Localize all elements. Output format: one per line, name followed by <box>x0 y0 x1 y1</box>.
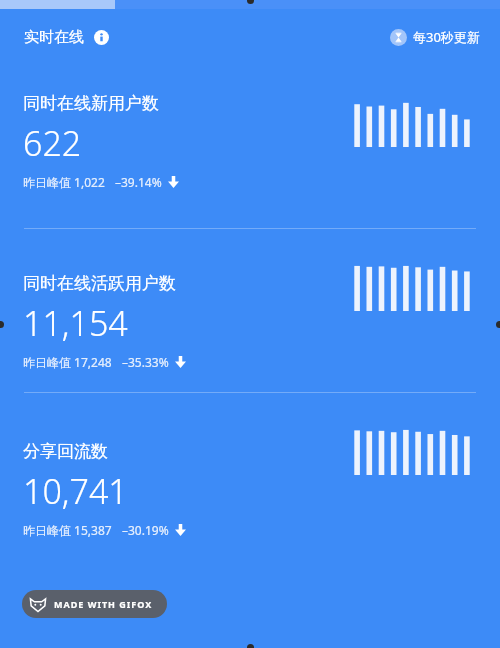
staticText: –35.33% <box>122 354 169 370</box>
staticText: 同时在线新用户数 <box>23 93 159 114</box>
staticText: 昨日峰值 17,248 <box>23 354 112 370</box>
button[interactable]: 同时在线新用户数 <box>0 65 500 190</box>
button[interactable]: 分享回流数 <box>0 393 500 538</box>
staticText: MADE WITH GIFOX <box>54 598 153 610</box>
staticText: 同时在线活跃用户数 <box>23 273 176 294</box>
staticText: 10,741 <box>23 468 128 514</box>
staticText: 分享回流数 <box>23 441 108 462</box>
staticText: 昨日峰值 1,022 <box>23 174 105 190</box>
staticText: 昨日峰值 15,387 <box>23 522 112 538</box>
staticText: 实时在线 <box>24 28 84 47</box>
staticText: 11,154 <box>23 300 128 346</box>
button[interactable]: Info <box>90 26 112 48</box>
button[interactable]: 每30秒更新 <box>390 28 480 46</box>
staticText: 每30秒更新 <box>413 28 480 46</box>
staticText: 622 <box>23 120 82 166</box>
staticText: –30.19% <box>122 522 169 538</box>
button[interactable]: 同时在线活跃用户数 <box>0 229 500 370</box>
staticText: –39.14% <box>115 174 162 190</box>
